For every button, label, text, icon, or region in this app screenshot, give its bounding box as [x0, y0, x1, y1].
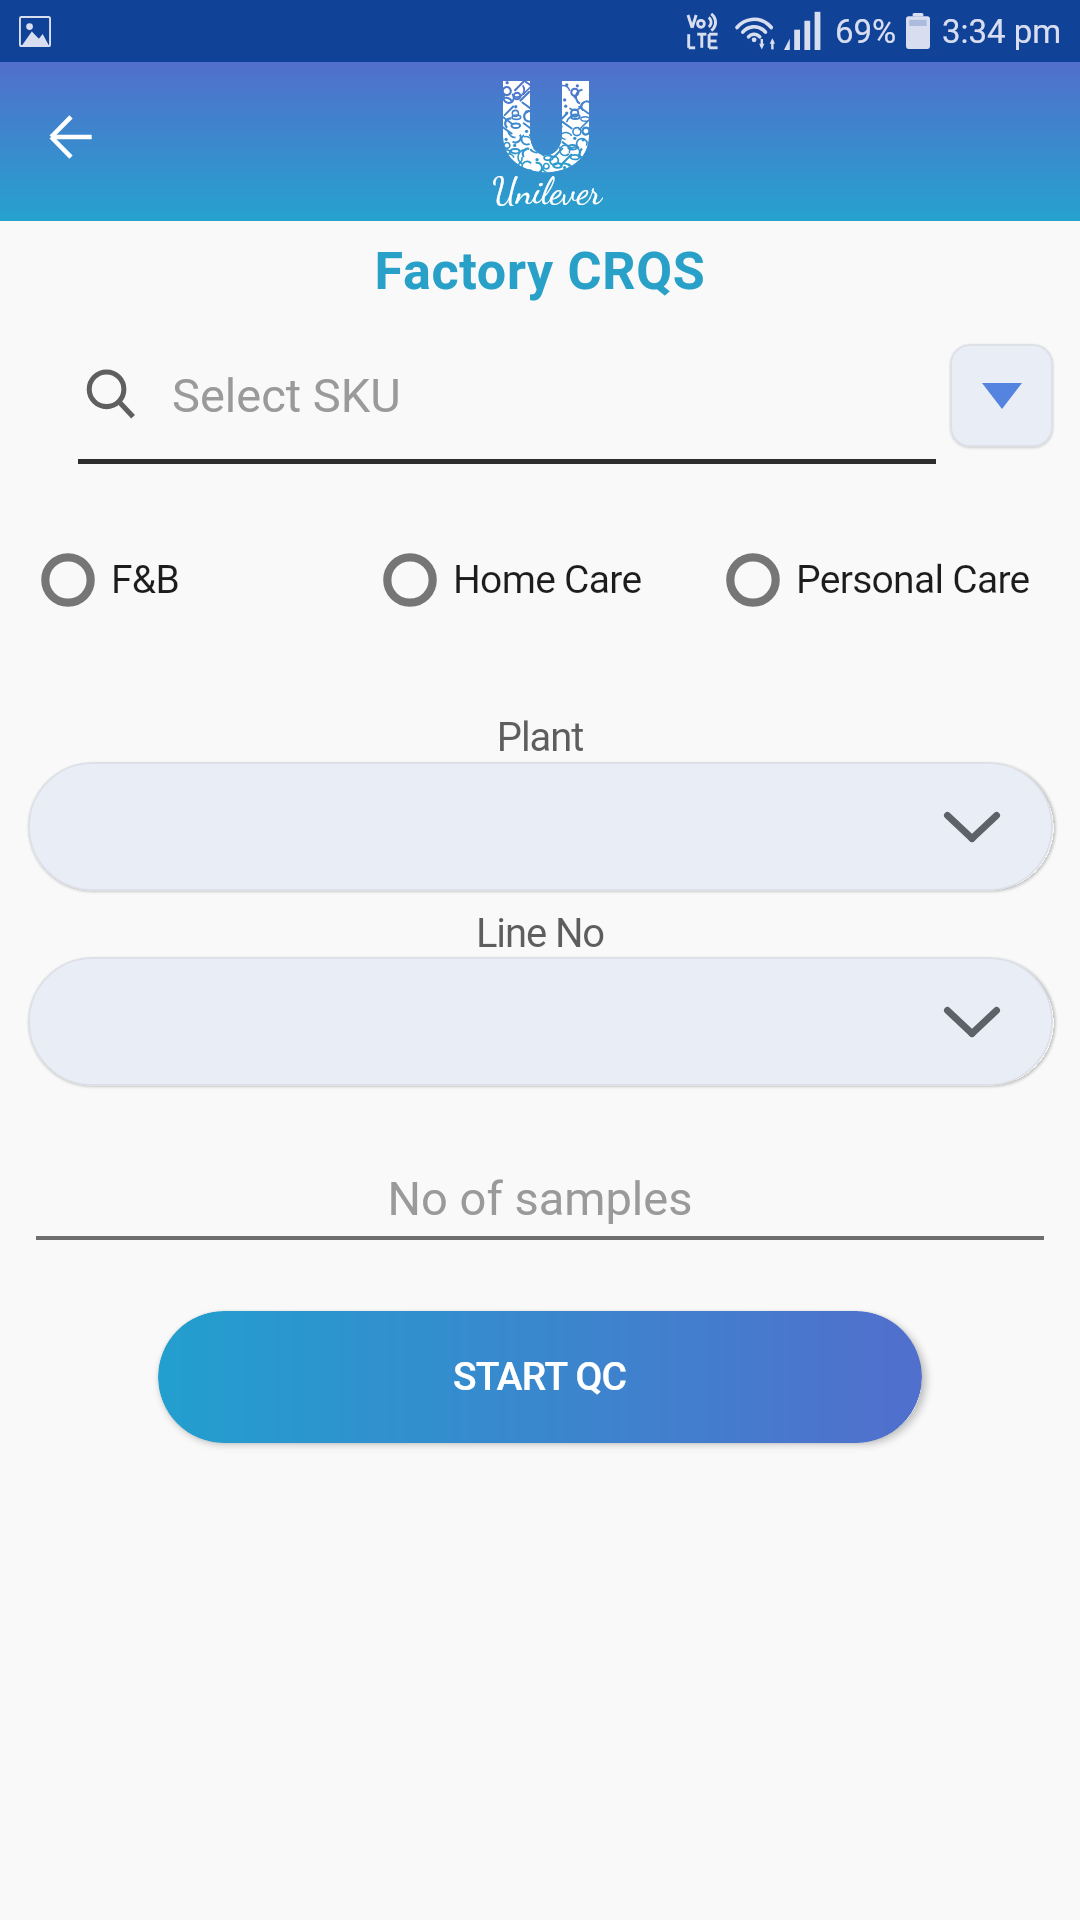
staticText: F&B	[111, 557, 180, 603]
staticText: Select SKU	[172, 368, 401, 423]
button[interactable]: Open SKU list	[950, 344, 1053, 447]
staticText: Factory CRQS	[0, 241, 1080, 302]
button[interactable]: Home Care	[383, 552, 642, 608]
button[interactable]: Select Line No	[28, 957, 1053, 1086]
staticText: Line No	[0, 910, 1080, 957]
staticText: 69%	[835, 12, 897, 51]
button[interactable]: START QC	[158, 1311, 922, 1443]
button[interactable]: F&B	[41, 552, 180, 608]
button[interactable]: Personal Care	[726, 552, 1030, 608]
button[interactable]: Select SKU	[78, 352, 936, 464]
staticText: START QC	[453, 1354, 627, 1400]
staticText: Personal Care	[796, 557, 1030, 603]
staticText: No of samples	[0, 1171, 1080, 1226]
button[interactable]: Select Plant	[28, 762, 1053, 891]
button[interactable]: Back	[27, 93, 115, 181]
staticText: Plant	[0, 714, 1080, 761]
staticText: Unilever	[489, 170, 605, 213]
staticText: Home Care	[453, 557, 642, 603]
staticText: 3:34 pm	[942, 12, 1062, 51]
